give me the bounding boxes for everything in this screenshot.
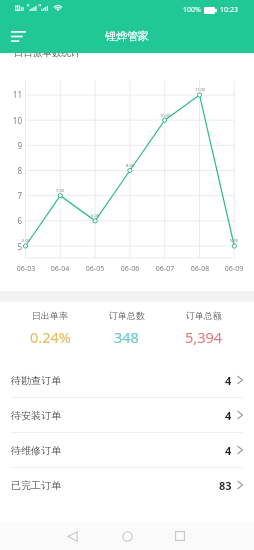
staticText: 100% [183,5,201,15]
staticText: 9 [6,140,22,151]
staticText: 0.24% [30,327,71,347]
button[interactable]: Back [59,523,85,549]
staticText: 订单总额 [186,310,222,321]
staticText: 6 [6,215,22,226]
staticText: 8.00 [121,163,139,168]
staticText: 06-07 [151,264,179,274]
staticText: 订单总数 [109,310,145,321]
staticText: 锂烨管家 [105,29,149,43]
staticText: 7.00 [51,188,69,193]
staticText: 8 [6,165,22,176]
staticText: 83 [219,478,232,493]
staticText: 06-03 [12,264,40,274]
staticText: 待勘查订单 [11,374,61,387]
staticText: 5.00 [17,238,35,243]
staticText: 日出单率 [32,310,68,321]
staticText: 11.00 [191,87,209,92]
button[interactable]: 待勘查订单 [0,363,254,397]
staticText: 06-04 [46,264,74,274]
staticText: 已完工订单 [11,479,61,492]
staticText: 4 [225,408,232,423]
staticText: 日日派单数统计 [14,47,81,59]
staticText: 10.00 [156,113,174,118]
staticText: 06-08 [186,264,214,274]
staticText: 348 [114,327,139,347]
staticText: 4 [225,373,232,388]
staticText: 06-09 [220,264,248,274]
button[interactable]: 待维修订单 [0,433,254,467]
staticText: 10 [6,115,22,126]
staticText: 10:23 [220,5,238,15]
staticText: 5,394 [185,327,223,347]
staticText: 11 [6,89,22,100]
button[interactable]: Recents [167,523,193,549]
button[interactable]: 已完工订单 [0,468,254,502]
button[interactable]: Home [114,523,140,549]
staticText: 7 [6,190,22,201]
button[interactable]: 待安装订单 [0,398,254,432]
staticText: 6.00 [86,213,104,218]
staticText: 待安装订单 [11,409,61,422]
button[interactable]: Menu [5,23,31,49]
staticText: 5.00 [225,238,243,243]
staticText: 06-05 [81,264,109,274]
staticText: 5 [6,241,22,252]
staticText: 06-06 [116,264,144,274]
staticText: 4 [225,443,232,458]
staticText: 待维修订单 [11,444,61,457]
